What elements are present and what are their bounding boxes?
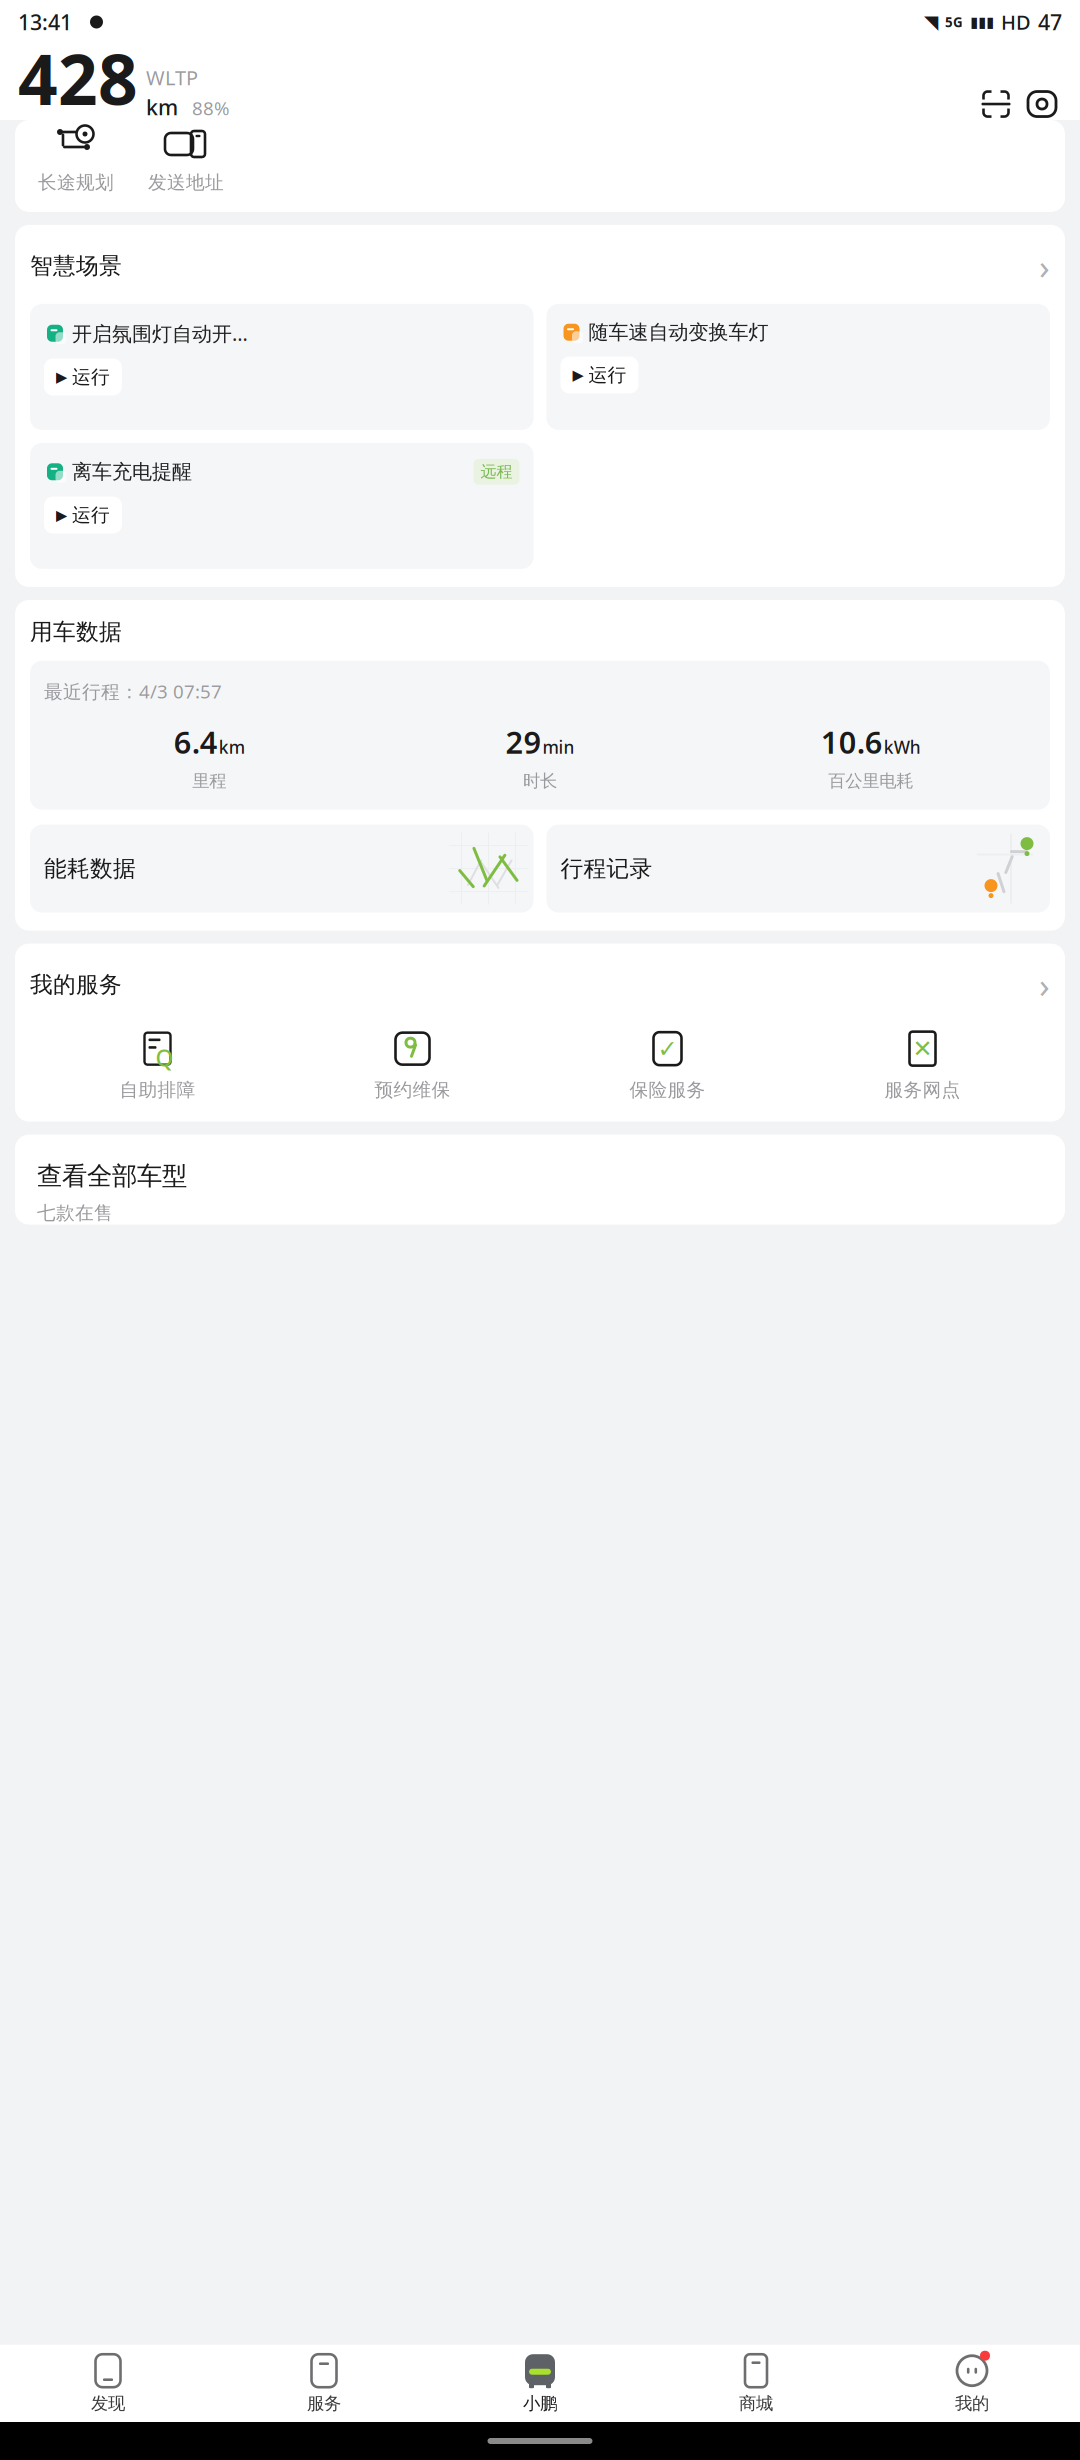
button[interactable]: Q bbox=[30, 1030, 285, 1101]
button[interactable]: 随车速自动变换车灯 bbox=[546, 304, 1050, 430]
staticText: 保险服务 bbox=[629, 1079, 705, 1101]
button[interactable]: ✕ bbox=[285, 1030, 540, 1101]
staticText: 用车数据 bbox=[30, 618, 122, 646]
staticText: 47 bbox=[1038, 8, 1062, 36]
staticText: kWh bbox=[884, 736, 921, 759]
staticText: 服务 bbox=[307, 2393, 341, 2414]
staticText: 百公里电耗 bbox=[828, 770, 913, 792]
button[interactable]: 开启氛围灯自动开… bbox=[30, 304, 533, 430]
button[interactable]: 查看全部车型 bbox=[15, 1135, 1065, 1225]
staticText: 我的服务 bbox=[30, 971, 122, 998]
staticText: 查看全部车型 bbox=[37, 1161, 187, 1192]
staticText: 运行 bbox=[72, 365, 110, 388]
staticText: 13:41 bbox=[18, 8, 72, 36]
staticText: › bbox=[1039, 243, 1050, 289]
staticText: ▮▮▮ bbox=[970, 14, 994, 30]
button[interactable]: ✓ bbox=[540, 1030, 795, 1101]
button[interactable]: 商城 bbox=[648, 2353, 864, 2414]
staticText: 预约维保 bbox=[374, 1079, 450, 1101]
staticText: 10.6 bbox=[821, 722, 883, 762]
button[interactable]: 长途规划 bbox=[21, 126, 131, 194]
button[interactable]: 离车充电提醒 bbox=[30, 443, 533, 569]
staticText: 自助排障 bbox=[119, 1079, 195, 1101]
button[interactable]: 小鹏 bbox=[432, 2353, 648, 2414]
button[interactable]: 我的服务 bbox=[30, 962, 1050, 1008]
button[interactable]: 服务 bbox=[216, 2353, 432, 2414]
staticText: 服务网点 bbox=[884, 1079, 960, 1101]
staticText: 远程 bbox=[480, 462, 512, 482]
staticText: 行程记录 bbox=[560, 855, 652, 882]
button[interactable]: 发现 bbox=[0, 2353, 216, 2414]
staticText: 运行 bbox=[72, 504, 110, 526]
staticText: 发现 bbox=[91, 2393, 125, 2414]
staticText: 发送地址 bbox=[148, 171, 224, 194]
staticText: 88% bbox=[192, 95, 230, 120]
staticText: 能耗数据 bbox=[44, 855, 136, 882]
staticText: 时长 bbox=[523, 770, 557, 792]
staticText: 6.4 bbox=[174, 722, 218, 762]
button[interactable]: 发送地址 bbox=[131, 126, 241, 194]
button[interactable]: 扫一扫 bbox=[976, 84, 1016, 124]
button[interactable]: ✕ bbox=[795, 1030, 1050, 1101]
staticText: 随车速自动变换车灯 bbox=[588, 320, 768, 345]
staticText: ✕ bbox=[912, 1035, 932, 1062]
staticText: min bbox=[542, 736, 574, 759]
staticText: 长途规划 bbox=[38, 171, 114, 194]
button[interactable]: 能耗数据 bbox=[30, 825, 533, 913]
staticText: km bbox=[146, 93, 178, 121]
button[interactable]: 我的 bbox=[864, 2353, 1080, 2414]
staticText: Q bbox=[155, 1043, 173, 1073]
staticText: 商城 bbox=[739, 2393, 773, 2414]
staticText: 智慧场景 bbox=[30, 252, 122, 280]
staticText: HD bbox=[1001, 9, 1031, 35]
staticText: km bbox=[219, 736, 245, 759]
staticText: ◥ bbox=[924, 11, 938, 33]
button[interactable]: ▶ bbox=[44, 497, 122, 533]
button[interactable]: ▶ bbox=[44, 358, 122, 395]
staticText: 我的 bbox=[955, 2393, 989, 2414]
staticText: ▶ bbox=[56, 507, 67, 523]
staticText: › bbox=[1039, 962, 1050, 1008]
staticText: ▶ bbox=[56, 369, 67, 385]
staticText: WLTP bbox=[146, 64, 198, 91]
button[interactable]: 行程记录 bbox=[546, 825, 1050, 913]
staticText: 开启氛围灯自动开… bbox=[72, 320, 248, 347]
staticText: ✓ bbox=[657, 1035, 677, 1062]
staticText: 428 bbox=[18, 32, 138, 124]
button[interactable]: 车辆控制 bbox=[1022, 84, 1062, 124]
staticText: 29 bbox=[505, 722, 541, 762]
staticText: 运行 bbox=[588, 363, 626, 386]
staticText: 最近行程：4/3 07:57 bbox=[44, 679, 222, 704]
button[interactable]: ▶ bbox=[560, 356, 638, 393]
staticText: 离车充电提醒 bbox=[72, 459, 192, 484]
staticText: 七款在售 bbox=[37, 1202, 113, 1225]
staticText: ▶ bbox=[572, 367, 583, 383]
staticText: 5G bbox=[945, 13, 963, 31]
staticText: 小鹏 bbox=[523, 2393, 557, 2414]
staticText: 里程 bbox=[192, 770, 226, 792]
button[interactable]: 智慧场景 bbox=[30, 243, 1050, 289]
